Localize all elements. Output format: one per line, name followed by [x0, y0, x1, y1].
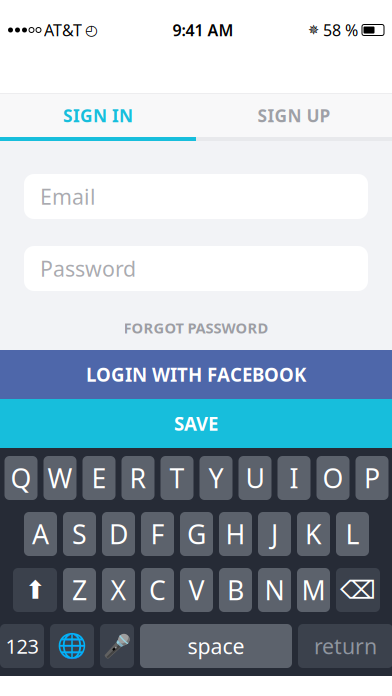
staticText: SIGN UP	[257, 104, 330, 127]
staticText: 🌐	[57, 632, 87, 660]
staticText: T	[169, 460, 184, 496]
button[interactable]: V	[180, 568, 213, 612]
staticText: SIGN IN	[63, 104, 133, 127]
staticText: SAVE	[174, 411, 218, 436]
button[interactable]: X	[102, 568, 135, 612]
button[interactable]: P	[355, 456, 388, 500]
staticText: Email	[40, 182, 96, 211]
staticText: Y	[208, 460, 223, 496]
staticText: LOGIN WITH FACEBOOK	[86, 362, 306, 387]
button[interactable]: Y	[199, 456, 232, 500]
button[interactable]: E	[82, 456, 115, 500]
button[interactable]: Dictation	[100, 624, 134, 668]
button[interactable]: SIGN UP	[196, 94, 392, 137]
button[interactable]: B	[219, 568, 252, 612]
button[interactable]: space	[140, 624, 292, 668]
staticText: R	[129, 460, 146, 496]
button[interactable]: R	[121, 456, 154, 500]
staticText: C	[149, 572, 166, 608]
button[interactable]: Next keyboard	[50, 624, 94, 668]
button[interactable]: J	[258, 512, 291, 556]
staticText: F	[150, 516, 164, 552]
staticText: 58 %	[323, 19, 358, 41]
staticText: 123	[5, 633, 38, 659]
staticText: D	[109, 516, 128, 552]
button[interactable]: SIGN IN	[0, 94, 196, 137]
staticText: AT&T	[44, 19, 82, 41]
staticText: Password	[40, 254, 136, 283]
button[interactable]: A	[24, 512, 57, 556]
button[interactable]: Q	[4, 456, 37, 500]
button[interactable]: FORGOT PASSWORD	[0, 314, 392, 341]
staticText: W	[47, 460, 72, 496]
button[interactable]: LOGIN WITH FACEBOOK	[0, 350, 392, 399]
staticText: ✵	[308, 22, 319, 37]
staticText: X	[110, 572, 126, 608]
button[interactable]: W	[43, 456, 76, 500]
staticText: J	[271, 516, 278, 552]
staticText: ◴	[85, 22, 98, 38]
button[interactable]: S	[63, 512, 96, 556]
button[interactable]: G	[180, 512, 213, 556]
staticText: Z	[72, 572, 87, 608]
button[interactable]: 123	[0, 624, 44, 668]
button[interactable]: C	[141, 568, 174, 612]
staticText: space	[187, 632, 244, 660]
button[interactable]: H	[219, 512, 252, 556]
button[interactable]: M	[297, 568, 330, 612]
staticText: Q	[10, 460, 31, 496]
button[interactable]: return	[298, 624, 392, 668]
button[interactable]: L	[336, 512, 369, 556]
staticText: U	[245, 460, 264, 496]
staticText: G	[187, 516, 206, 552]
staticText: ⬆	[24, 576, 45, 604]
button[interactable]: F	[141, 512, 174, 556]
staticText: M	[301, 572, 325, 608]
staticText: V	[188, 572, 204, 608]
button[interactable]: SAVE	[0, 399, 392, 448]
staticText: E	[91, 460, 106, 496]
staticText: A	[32, 516, 49, 552]
staticText: 9:41 AM	[172, 19, 233, 41]
button[interactable]: K	[297, 512, 330, 556]
staticText: O	[322, 460, 343, 496]
staticText: N	[264, 572, 284, 608]
button[interactable]: U	[238, 456, 271, 500]
staticText: P	[364, 460, 380, 496]
staticText: H	[225, 516, 245, 552]
button[interactable]: Delete	[336, 568, 380, 612]
button[interactable]: T	[160, 456, 193, 500]
button[interactable]: D	[102, 512, 135, 556]
button[interactable]: O	[316, 456, 349, 500]
staticText: K	[305, 516, 322, 552]
button[interactable]: I	[277, 456, 310, 500]
staticText: return	[314, 632, 377, 660]
staticText: L	[345, 516, 359, 552]
staticText: ⌫	[340, 576, 376, 604]
button[interactable]: Shift	[13, 568, 57, 612]
staticText: S	[72, 516, 87, 552]
staticText: 🎤	[103, 633, 131, 659]
staticText: FORGOT PASSWORD	[123, 318, 268, 337]
staticText: B	[227, 572, 244, 608]
staticText: I	[289, 460, 298, 496]
button[interactable]: Z	[63, 568, 96, 612]
button[interactable]: N	[258, 568, 291, 612]
